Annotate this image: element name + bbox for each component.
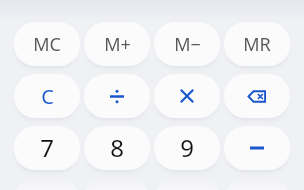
staticText: MC [33,32,61,57]
button[interactable]: 9 [154,126,220,170]
button[interactable]: Backspace [224,74,290,118]
button[interactable]: MC [14,22,80,66]
button[interactable]: M− [154,22,220,66]
staticText: 8 [110,131,124,164]
button[interactable]: Divide [84,74,150,118]
button[interactable]: C [14,74,80,118]
button[interactable]: M+ [84,22,150,66]
button[interactable]: Minus [224,126,290,170]
staticText: 9 [180,131,194,164]
button[interactable]: MR [224,22,290,66]
other: Divide [110,89,124,103]
staticText: M− [174,32,201,57]
staticText: C [41,83,54,110]
staticText: M+ [104,32,131,57]
button[interactable]: 8 [84,126,150,170]
button[interactable]: 7 [14,126,80,170]
other: Backspace [247,90,266,103]
staticText: 7 [40,131,54,164]
other: Multiply [180,89,194,103]
other: Minus [250,146,264,150]
staticText: MR [243,32,271,57]
button[interactable]: Multiply [154,74,220,118]
